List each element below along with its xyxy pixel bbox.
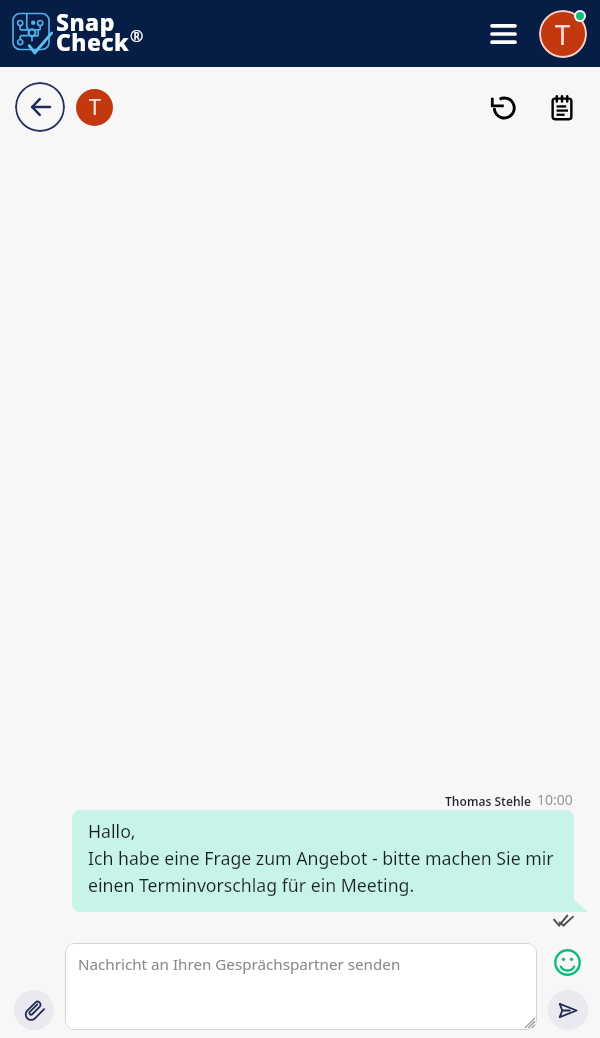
staticText: Nachricht an Ihren Gesprächspartner send… [78, 954, 401, 975]
button[interactable]: Snap Check [12, 8, 130, 59]
button[interactable]: Profile [539, 10, 587, 58]
button[interactable]: Attach file [14, 990, 54, 1030]
staticText: Hallo, Ich habe eine Frage zum Angebot -… [88, 819, 554, 897]
button[interactable]: Notes [542, 88, 582, 128]
button[interactable]: Back [15, 82, 65, 132]
button[interactable]: Menu [488, 16, 519, 52]
staticText: Thomas Stehle [445, 793, 532, 809]
staticText: ® [130, 25, 144, 47]
staticText: T [555, 16, 571, 53]
button[interactable]: Emoji [549, 944, 585, 980]
button[interactable]: T [76, 89, 113, 126]
staticText: 10:00 [537, 790, 573, 809]
staticText: Snap Check [56, 6, 130, 57]
button[interactable]: Nachricht an Ihren Gesprächspartner send… [65, 943, 537, 1030]
button[interactable]: Refresh [483, 88, 523, 128]
staticText: T [89, 93, 101, 122]
button[interactable]: Send [548, 990, 588, 1030]
